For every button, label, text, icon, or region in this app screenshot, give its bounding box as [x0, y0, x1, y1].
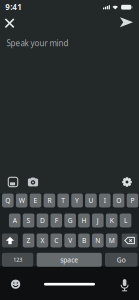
button[interactable]: Emoji: [10, 278, 22, 290]
staticText: Z: [27, 236, 31, 245]
staticText: A: [13, 216, 17, 225]
staticText: D: [40, 216, 45, 225]
staticText: T: [61, 196, 65, 205]
button[interactable]: B: [78, 233, 90, 248]
button[interactable]: W: [16, 193, 28, 208]
button[interactable]: space: [37, 252, 102, 267]
staticText: O: [116, 196, 121, 205]
button[interactable]: Y: [71, 193, 83, 208]
button[interactable]: A: [9, 213, 21, 228]
button[interactable]: X: [37, 233, 48, 248]
staticText: C: [54, 236, 58, 245]
button[interactable]: Close: [3, 16, 17, 30]
button[interactable]: F: [50, 213, 62, 228]
staticText: E: [33, 196, 37, 205]
button[interactable]: 123: [2, 252, 33, 267]
button[interactable]: Settings: [121, 176, 133, 188]
button[interactable]: P: [127, 193, 138, 208]
button[interactable]: Take photo: [27, 176, 39, 188]
staticText: 9:41: [5, 1, 22, 12]
staticText: 123: [13, 256, 22, 263]
staticText: P: [130, 196, 134, 205]
button[interactable]: Add photo: [7, 176, 19, 188]
button[interactable]: R: [43, 193, 55, 208]
button[interactable]: Send: [119, 17, 133, 28]
button[interactable]: Go: [105, 252, 138, 267]
button[interactable]: Dictate: [119, 279, 131, 291]
button[interactable]: N: [92, 233, 104, 248]
staticText: B: [82, 236, 86, 245]
button[interactable]: V: [64, 233, 76, 248]
button[interactable]: D: [37, 213, 48, 228]
button[interactable]: H: [78, 213, 90, 228]
staticText: V: [68, 236, 72, 245]
staticText: M: [109, 236, 115, 245]
button[interactable]: Q: [2, 193, 14, 208]
staticText: G: [68, 216, 73, 225]
button[interactable]: K: [106, 213, 118, 228]
button[interactable]: G: [64, 213, 76, 228]
staticText: Q: [5, 196, 10, 205]
button[interactable]: T: [57, 193, 69, 208]
staticText: J: [97, 216, 99, 225]
staticText: X: [40, 236, 44, 245]
staticText: F: [55, 216, 58, 225]
button[interactable]: U: [85, 193, 97, 208]
staticText: W: [19, 196, 25, 205]
button[interactable]: E: [30, 193, 41, 208]
button[interactable]: C: [50, 233, 62, 248]
staticText: Speak your mind: [6, 38, 68, 48]
button[interactable]: O: [113, 193, 124, 208]
button[interactable]: M: [106, 233, 117, 248]
staticText: H: [81, 216, 86, 225]
button[interactable]: J: [92, 213, 104, 228]
staticText: N: [95, 236, 100, 245]
staticText: U: [88, 196, 93, 205]
staticText: R: [47, 196, 51, 205]
staticText: L: [124, 216, 127, 225]
staticText: S: [27, 216, 31, 225]
button[interactable]: Delete: [122, 233, 138, 248]
staticText: space: [60, 255, 78, 264]
staticText: K: [110, 216, 114, 225]
button[interactable]: Z: [23, 233, 34, 248]
staticText: I: [104, 196, 106, 205]
staticText: Go: [117, 255, 126, 264]
button[interactable]: Shift: [2, 233, 18, 248]
button[interactable]: S: [23, 213, 34, 228]
button[interactable]: L: [120, 213, 131, 228]
staticText: Y: [75, 196, 79, 205]
button[interactable]: I: [99, 193, 111, 208]
